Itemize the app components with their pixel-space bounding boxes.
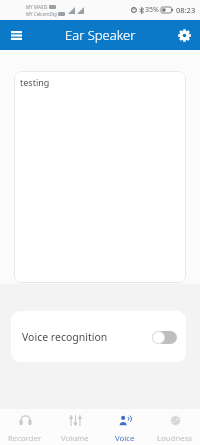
staticText: 35% xyxy=(145,5,159,15)
staticText: Ear Speaker xyxy=(65,26,136,44)
button[interactable]: Voice xyxy=(100,409,150,445)
staticText: Volume xyxy=(61,433,89,444)
button[interactable]: Recorder xyxy=(0,409,50,445)
staticText: Loudness xyxy=(157,433,193,444)
staticText: Voice xyxy=(115,433,135,444)
button[interactable]: Voice recognition xyxy=(11,311,186,362)
staticText: MY MAXIS xyxy=(26,4,48,10)
button[interactable]: Settings xyxy=(171,22,197,48)
button[interactable]: testing xyxy=(14,71,186,283)
staticText: testing xyxy=(20,76,50,88)
staticText: 08:23 xyxy=(176,5,196,15)
staticText: Voice recognition xyxy=(22,330,108,344)
button[interactable]: Menu xyxy=(3,22,29,48)
button[interactable]: Voice recognition toggle xyxy=(152,330,177,344)
staticText: MY CelcomDig xyxy=(26,11,57,17)
button[interactable]: Loudness xyxy=(150,409,200,445)
staticText: Recorder xyxy=(8,433,42,444)
button[interactable]: Volume xyxy=(50,409,100,445)
